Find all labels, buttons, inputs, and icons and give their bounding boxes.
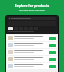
staticText: Explore for products: [0, 3, 64, 8]
button[interactable]: Add to cart: [49, 58, 56, 61]
button[interactable]: Add to cart: [7, 56, 57, 62]
button[interactable]: Search: [8, 17, 56, 20]
button[interactable]: Add to cart: [49, 51, 56, 54]
button[interactable]: Add to cart: [7, 63, 57, 69]
button[interactable]: Add to cart: [49, 44, 56, 47]
button[interactable]: Add to cart: [7, 49, 57, 55]
button[interactable]: Add to cart: [7, 35, 57, 41]
button[interactable]: Add to cart: [49, 37, 56, 40]
button[interactable]: Add to cart: [7, 42, 57, 48]
staticText: and find what you need: [0, 9, 64, 12]
button[interactable]: Add to cart: [49, 65, 56, 68]
button[interactable]: All: [8, 27, 13, 30]
